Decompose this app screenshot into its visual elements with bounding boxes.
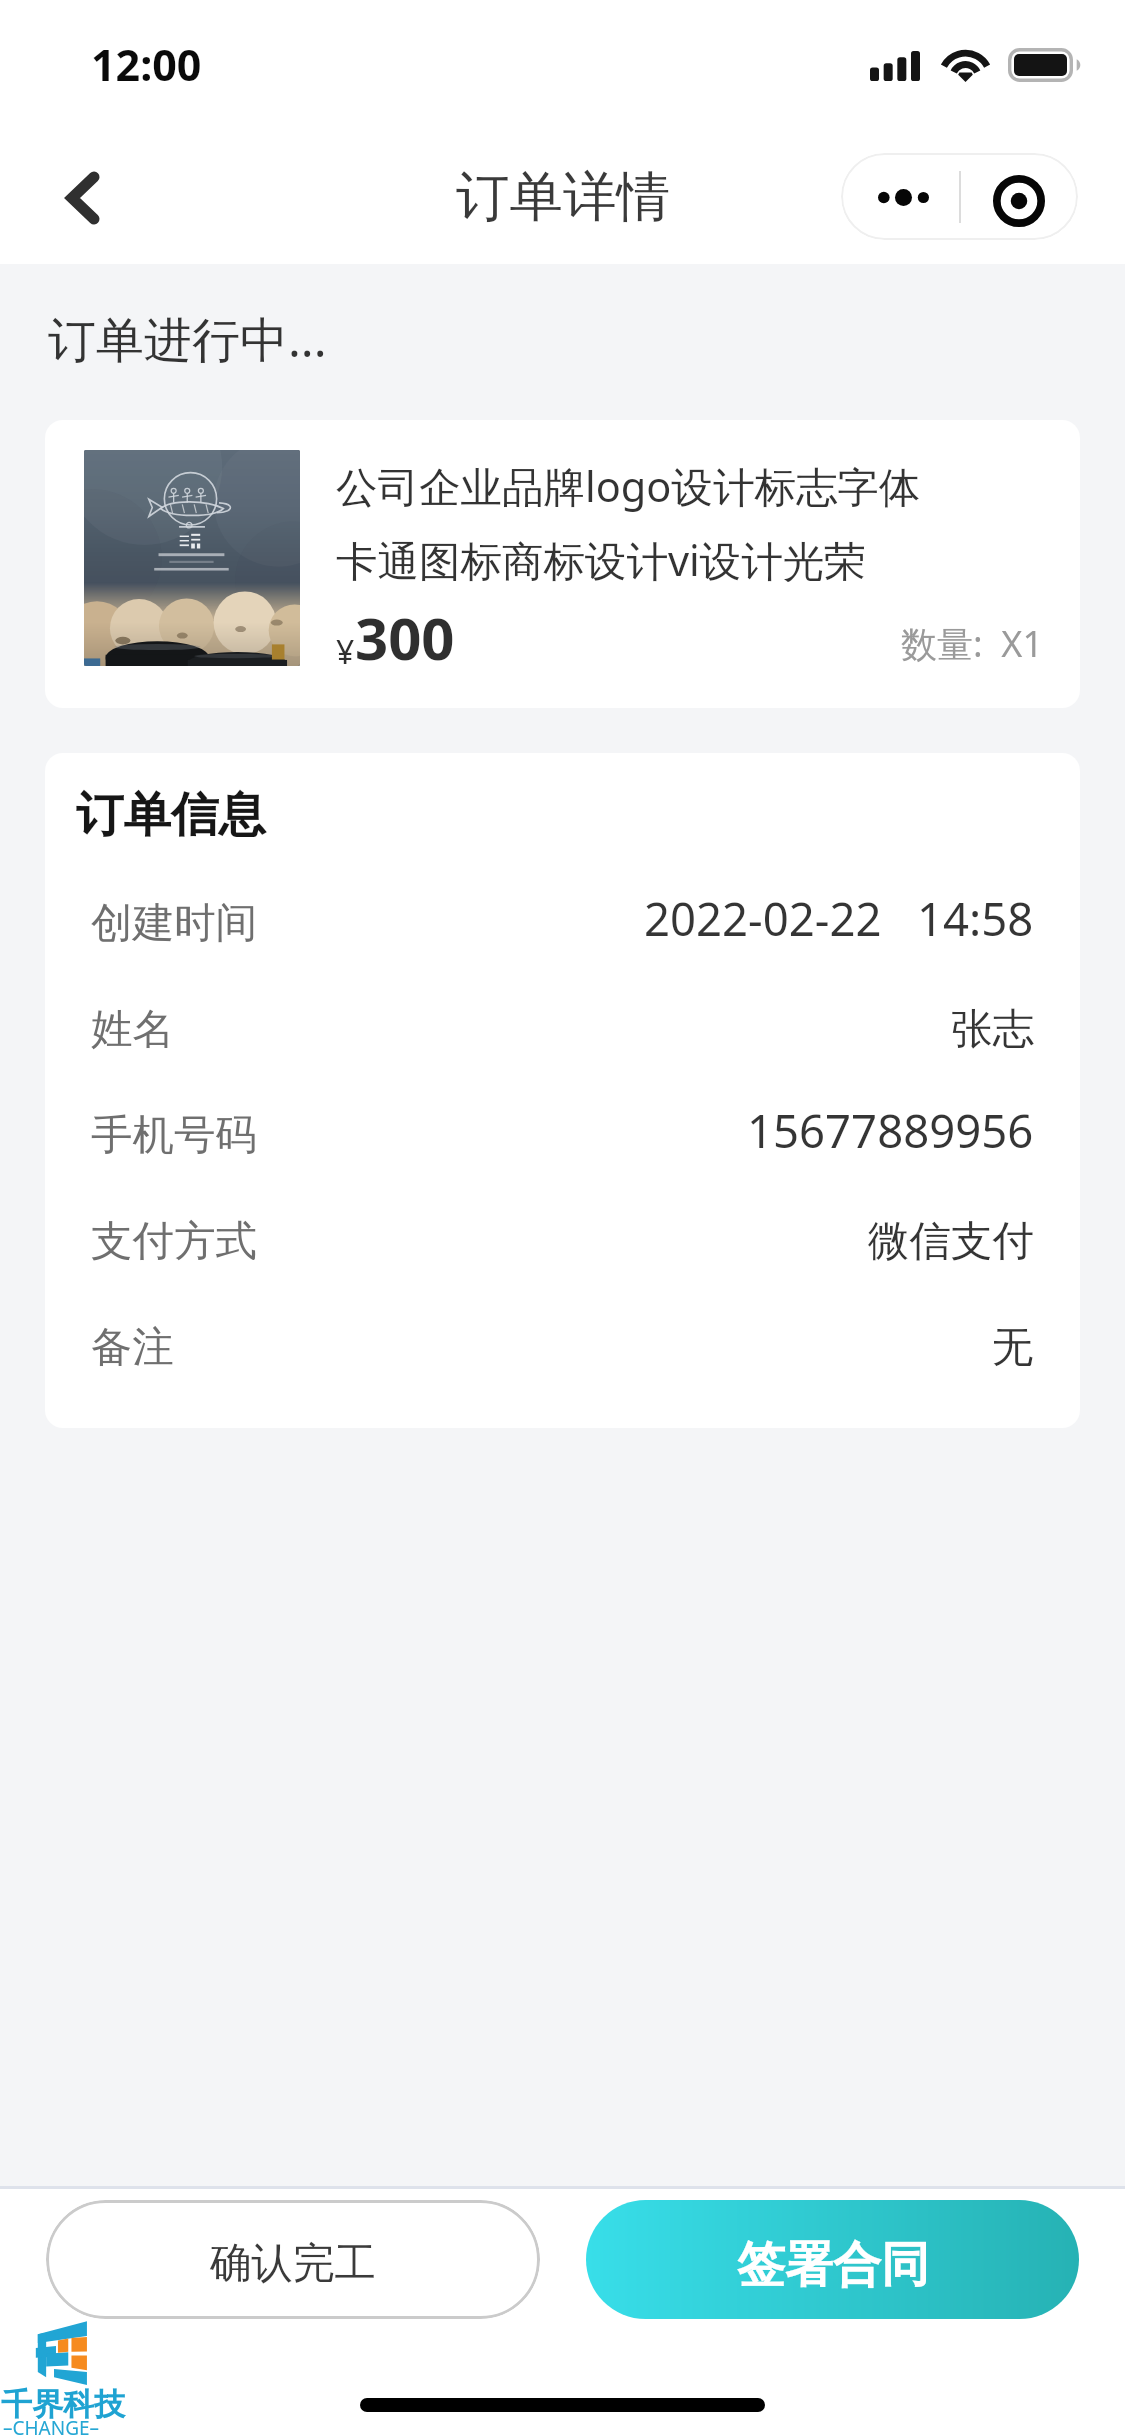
button[interactable]: 公司企业品牌logo设计标志字体 (45, 420, 1080, 708)
staticText: 2022-02-22 14:58 (644, 887, 1034, 949)
staticText: 300 (355, 598, 455, 677)
staticText: 创建时间 (91, 897, 257, 949)
staticText: 无 (992, 1321, 1034, 1373)
button[interactable]: 确认完工 (46, 2200, 540, 2319)
staticText: 订单详情 (456, 163, 670, 230)
button[interactable]: 签署合同 (586, 2200, 1079, 2319)
staticText: 签署合同 (737, 2235, 929, 2295)
staticText: 微信支付 (868, 1215, 1034, 1267)
staticText: ¥ (336, 630, 355, 674)
staticText: 张志 (951, 1003, 1034, 1055)
button[interactable]: Close mini program (959, 153, 1078, 240)
staticText: 支付方式 (91, 1215, 257, 1267)
staticText: –CHANGE– (3, 2415, 100, 2436)
staticText: 订单进行中... (48, 306, 327, 372)
staticText: 手机号码 (91, 1109, 257, 1161)
button[interactable]: Back (38, 153, 128, 243)
staticText: 数量: X1 (901, 619, 1044, 668)
staticText: 15677889956 (747, 1099, 1034, 1161)
staticText: 确认完工 (210, 2237, 376, 2289)
staticText: 备注 (91, 1321, 174, 1373)
staticText: 订单信息 (76, 785, 266, 845)
staticText: 公司企业品牌logo设计标志字体 (336, 458, 921, 515)
staticText: 千界科技 (1, 2385, 125, 2424)
button[interactable]: More options (841, 153, 959, 240)
staticText: 姓名 (91, 1003, 174, 1055)
staticText: 卡通图标商标设计vi设计光荣 (336, 532, 866, 589)
staticText: 12:00 (91, 35, 202, 94)
